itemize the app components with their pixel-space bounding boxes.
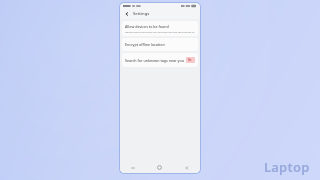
button[interactable]: Search for unknown tags near you [122, 53, 198, 67]
button[interactable]: Back [173, 162, 200, 173]
staticText: Allow devices to be found [125, 24, 169, 29]
staticText: New [188, 58, 193, 62]
button[interactable]: Encrypt offline location [122, 38, 198, 51]
staticText: Search for unknown tags near you [125, 58, 184, 63]
button[interactable]: Back [123, 10, 131, 18]
staticText: Devices which are near you can find you … [125, 30, 195, 33]
button[interactable]: Home [146, 162, 173, 173]
staticText: Laptop [264, 158, 310, 176]
staticText: Settings [133, 11, 150, 17]
button[interactable]: Recent apps [120, 162, 146, 173]
button[interactable]: Allow devices to be found [122, 21, 198, 36]
staticText: Encrypt offline location [125, 42, 165, 47]
